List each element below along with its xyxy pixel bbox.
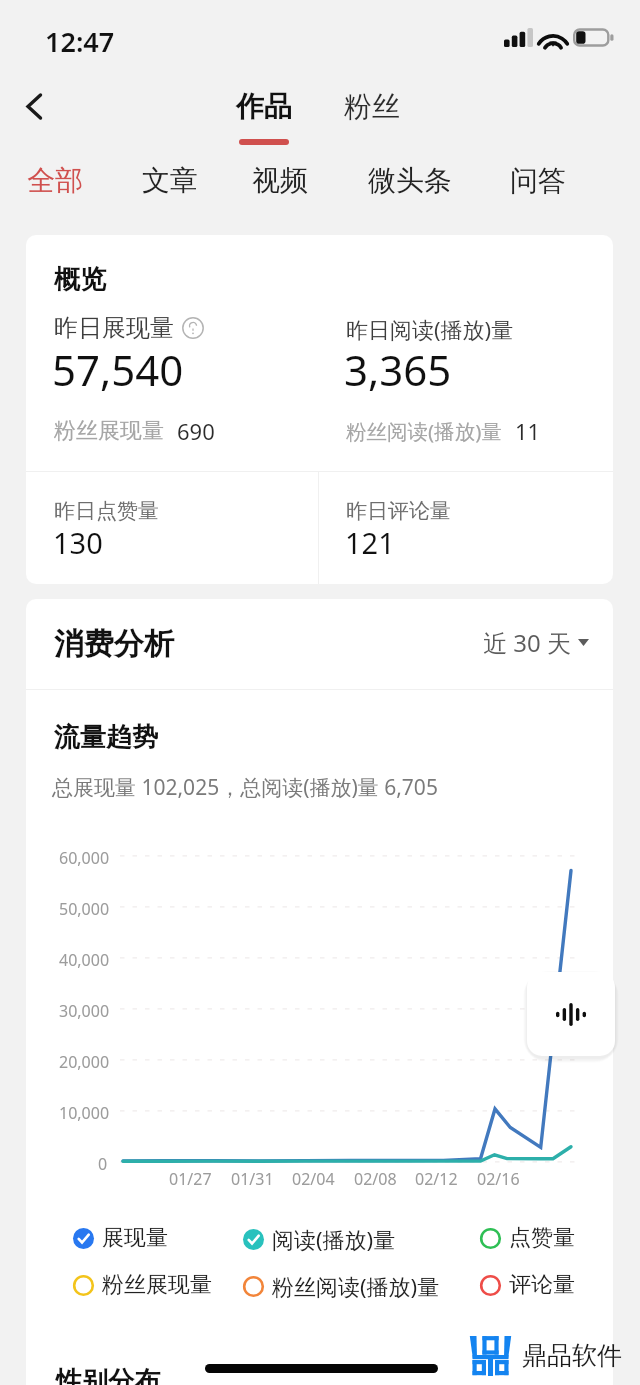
staticText: 60,000 xyxy=(59,847,110,869)
staticText: 消费分析 xyxy=(54,625,174,663)
staticText: 01/27 xyxy=(169,1168,212,1190)
button[interactable]: 近 30 天 xyxy=(483,622,589,663)
staticText: 昨日展现量 xyxy=(54,313,174,343)
staticText: 12:47 xyxy=(45,23,115,60)
button[interactable]: 作品 xyxy=(236,89,292,145)
button[interactable]: 粉丝 xyxy=(344,89,400,124)
button[interactable]: 微头条 xyxy=(362,155,458,206)
staticText: 视频 xyxy=(252,163,308,198)
staticText: 点赞量 xyxy=(509,1224,575,1252)
staticText: 11 xyxy=(515,416,541,446)
staticText: 粉丝阅读(播放)量 xyxy=(346,417,502,445)
button[interactable]: 粉丝阅读(播放)量 xyxy=(243,1271,440,1301)
staticText: 昨日评论量 xyxy=(346,498,451,524)
button[interactable]: Back xyxy=(10,82,58,130)
staticText: 鼎品软件 xyxy=(522,1340,622,1371)
staticText: 121 xyxy=(345,523,395,562)
staticText: 流量趋势 xyxy=(54,721,158,754)
staticText: 30,000 xyxy=(59,1000,110,1022)
staticText: 130 xyxy=(53,523,103,562)
button[interactable]: 粉丝展现量 xyxy=(73,1271,212,1299)
staticText: 0 xyxy=(98,1153,108,1175)
staticText: 全部 xyxy=(27,163,83,198)
staticText: 02/04 xyxy=(292,1168,335,1190)
button[interactable]: 阅读(播放)量 xyxy=(243,1224,396,1254)
staticText: 微头条 xyxy=(368,163,452,198)
staticText: 粉丝 xyxy=(344,89,400,124)
staticText: 问答 xyxy=(510,163,566,198)
staticText: 3,365 xyxy=(344,341,452,398)
staticText: 690 xyxy=(177,416,215,446)
staticText: 文章 xyxy=(142,163,198,198)
staticText: 01/31 xyxy=(231,1168,274,1190)
staticText: 昨日点赞量 xyxy=(54,498,159,524)
staticText: 昨日阅读(播放)量 xyxy=(346,314,514,344)
staticText: 总展现量 102,025，总阅读(播放)量 6,705 xyxy=(52,773,438,802)
staticText: 02/08 xyxy=(354,1168,397,1190)
button[interactable]: 视频 xyxy=(246,155,314,206)
button[interactable]: Audio waveform xyxy=(527,972,615,1056)
button[interactable]: 评论量 xyxy=(480,1271,575,1299)
staticText: 性别分布 xyxy=(56,1365,160,1385)
staticText: 40,000 xyxy=(59,949,110,971)
staticText: 粉丝展现量 xyxy=(102,1271,212,1299)
staticText: 20,000 xyxy=(59,1051,110,1073)
staticText: 阅读(播放)量 xyxy=(272,1224,396,1254)
staticText: 50,000 xyxy=(59,898,110,920)
staticText: 展现量 xyxy=(102,1224,168,1252)
button[interactable]: 文章 xyxy=(136,155,204,206)
staticText: 10,000 xyxy=(59,1102,110,1124)
button[interactable]: 全部 xyxy=(21,155,89,206)
staticText: 粉丝阅读(播放)量 xyxy=(272,1271,440,1301)
button[interactable]: 点赞量 xyxy=(480,1224,575,1252)
staticText: 作品 xyxy=(236,89,292,124)
staticText: 概览 xyxy=(54,263,106,296)
staticText: 02/16 xyxy=(477,1168,520,1190)
staticText: 评论量 xyxy=(509,1271,575,1299)
button[interactable]: 问答 xyxy=(504,155,572,206)
staticText: 粉丝展现量 xyxy=(54,417,164,445)
staticText: 57,540 xyxy=(52,341,184,398)
staticText: 02/12 xyxy=(415,1168,458,1190)
button[interactable]: 展现量 xyxy=(73,1224,168,1252)
staticText: 近 30 天 xyxy=(483,626,571,659)
